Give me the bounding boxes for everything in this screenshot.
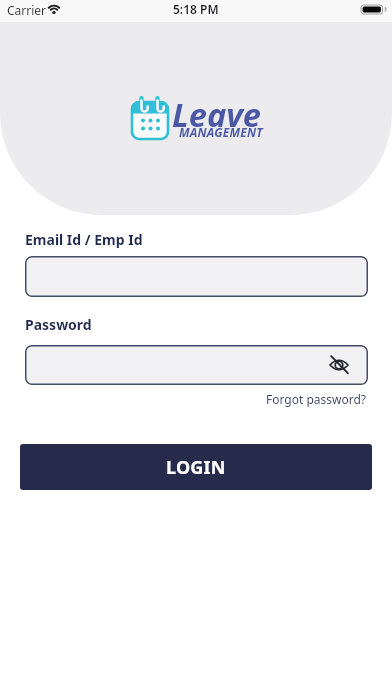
button[interactable] bbox=[328, 354, 350, 376]
staticText: MANAGEMENT bbox=[179, 124, 263, 140]
button[interactable] bbox=[25, 256, 368, 297]
staticText: Carrier bbox=[7, 2, 47, 18]
staticText: LOGIN bbox=[166, 455, 226, 480]
staticText: 5:18 PM bbox=[173, 1, 219, 17]
button[interactable]: LOGIN bbox=[20, 444, 372, 490]
staticText: Email Id / Emp Id bbox=[25, 230, 143, 249]
staticText: Password bbox=[25, 315, 92, 334]
button[interactable] bbox=[25, 345, 368, 385]
button[interactable]: Forgot password? bbox=[266, 391, 367, 407]
staticText: Leave bbox=[172, 92, 261, 136]
